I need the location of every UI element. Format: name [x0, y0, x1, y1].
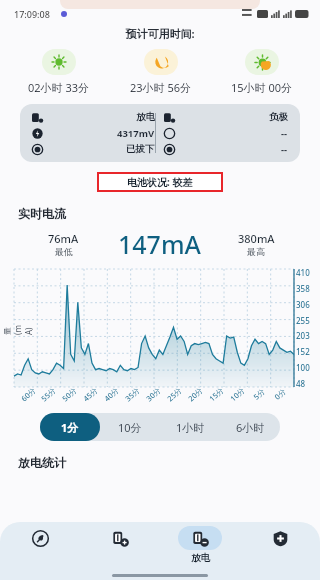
staticText: 最高: [247, 246, 265, 257]
staticText: 10分: [118, 420, 142, 435]
staticText: 15分: [207, 385, 226, 403]
staticText: 放电: [191, 552, 210, 564]
button[interactable]: 15小时 00分: [211, 49, 312, 95]
staticText: 5分: [251, 386, 267, 402]
staticText: 48: [296, 378, 306, 389]
staticText: 358: [296, 283, 310, 294]
button[interactable]: Health: [240, 526, 320, 550]
staticText: 20分: [186, 385, 205, 403]
staticText: 100: [296, 362, 310, 373]
staticText: 380mA: [238, 231, 275, 246]
staticText: 40分: [102, 385, 121, 403]
staticText: 17:09:08: [14, 8, 50, 20]
staticText: 152: [296, 346, 310, 357]
button[interactable]: 1小时: [160, 413, 220, 441]
staticText: 45分: [81, 385, 100, 403]
staticText: 1分: [61, 420, 79, 435]
button[interactable]: 02小时 33分: [8, 49, 110, 95]
button[interactable]: 23小时 56分: [110, 49, 211, 95]
staticText: 02小时 33分: [28, 80, 90, 95]
staticText: 25分: [165, 385, 184, 403]
staticText: 1小时: [176, 420, 205, 435]
staticText: 35分: [123, 385, 142, 403]
staticText: 76mA: [48, 231, 79, 246]
button[interactable]: 10分: [100, 413, 160, 441]
staticText: 0分: [272, 386, 288, 402]
staticText: 预计可用时间:: [0, 26, 320, 41]
staticText: 306: [296, 299, 310, 310]
staticText: 55分: [39, 385, 58, 403]
staticText: 负极: [269, 111, 288, 123]
staticText: 已拔下: [126, 143, 155, 155]
staticText: 电池状况: 较差: [127, 175, 193, 189]
staticText: 60分: [19, 385, 38, 403]
button[interactable]: 6小时: [220, 413, 280, 441]
staticText: 10分: [228, 385, 247, 403]
staticText: 放电统计: [18, 455, 66, 470]
staticText: 6小时: [236, 420, 265, 435]
staticText: 50分: [60, 385, 79, 403]
staticText: 255: [296, 315, 310, 326]
staticText: 最低: [55, 246, 73, 257]
button[interactable]: 放电: [160, 526, 240, 564]
staticText: 使用量 (mA): [0, 321, 34, 335]
button[interactable]: 放电: [20, 104, 300, 162]
button[interactable]: Eco: [0, 526, 80, 550]
staticText: 放电: [136, 111, 155, 123]
staticText: --: [281, 143, 288, 156]
button[interactable]: 1分: [40, 413, 100, 441]
staticText: 23小时 56分: [130, 80, 192, 95]
staticText: 实时电流: [18, 206, 66, 221]
staticText: 15小时 00分: [231, 80, 293, 95]
staticText: 30分: [144, 385, 163, 403]
button[interactable]: 电池状况: 较差: [97, 172, 223, 192]
staticText: 4317mV: [117, 127, 155, 140]
button[interactable]: Charge: [80, 526, 160, 550]
staticText: 410: [296, 267, 310, 278]
staticText: 203: [296, 330, 310, 341]
staticText: --: [281, 127, 288, 140]
staticText: 147mA: [118, 227, 201, 261]
